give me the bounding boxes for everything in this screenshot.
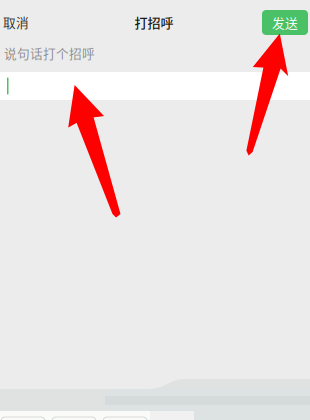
button[interactable]: 取消	[3, 7, 43, 37]
staticText: 打招呼	[134, 12, 173, 31]
staticText: 发送	[272, 13, 298, 32]
button[interactable]: 发送	[262, 10, 308, 35]
staticText: 取消	[3, 13, 29, 31]
staticText: 说句话打个招呼	[4, 44, 95, 62]
